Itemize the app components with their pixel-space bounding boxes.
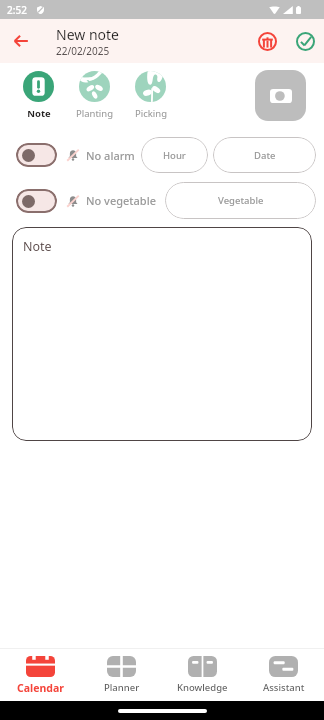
button[interactable]: Delete bbox=[252, 26, 282, 56]
button[interactable]: Hour bbox=[141, 137, 208, 173]
button[interactable]: Save bbox=[290, 26, 320, 56]
staticText: 22/02/2025 bbox=[56, 44, 110, 58]
button[interactable]: Assistant bbox=[243, 656, 324, 694]
staticText: Planting bbox=[76, 107, 113, 120]
button[interactable]: Note bbox=[15, 71, 62, 120]
button[interactable]: Picking bbox=[127, 71, 174, 120]
button[interactable]: Toggle bbox=[16, 189, 57, 213]
staticText: Knowledge bbox=[177, 681, 228, 694]
button[interactable]: Planner bbox=[81, 656, 162, 694]
staticText: Note bbox=[23, 238, 52, 255]
staticText: Picking bbox=[135, 107, 167, 120]
staticText: 2:52 bbox=[7, 3, 27, 17]
staticText: Hour bbox=[163, 149, 186, 162]
button[interactable]: Knowledge bbox=[162, 656, 243, 694]
button[interactable]: Vegetable bbox=[165, 182, 316, 219]
staticText: Date bbox=[254, 149, 276, 162]
button[interactable]: Back bbox=[6, 26, 36, 56]
staticText: Note bbox=[27, 107, 51, 120]
staticText: Vegetable bbox=[218, 194, 264, 207]
button[interactable]: Planting bbox=[71, 71, 118, 120]
staticText: Assistant bbox=[263, 681, 305, 694]
staticText: No vegetable bbox=[86, 193, 156, 208]
staticText: Calendar bbox=[17, 681, 64, 695]
button[interactable]: Toggle bbox=[16, 143, 57, 167]
staticText: New note bbox=[56, 25, 119, 44]
button[interactable]: Take photo bbox=[255, 70, 306, 121]
button[interactable]: Calendar bbox=[0, 656, 81, 695]
staticText: No alarm bbox=[86, 148, 135, 163]
button[interactable]: Note bbox=[12, 227, 312, 441]
staticText: Planner bbox=[104, 681, 140, 694]
button[interactable]: Date bbox=[213, 137, 316, 173]
